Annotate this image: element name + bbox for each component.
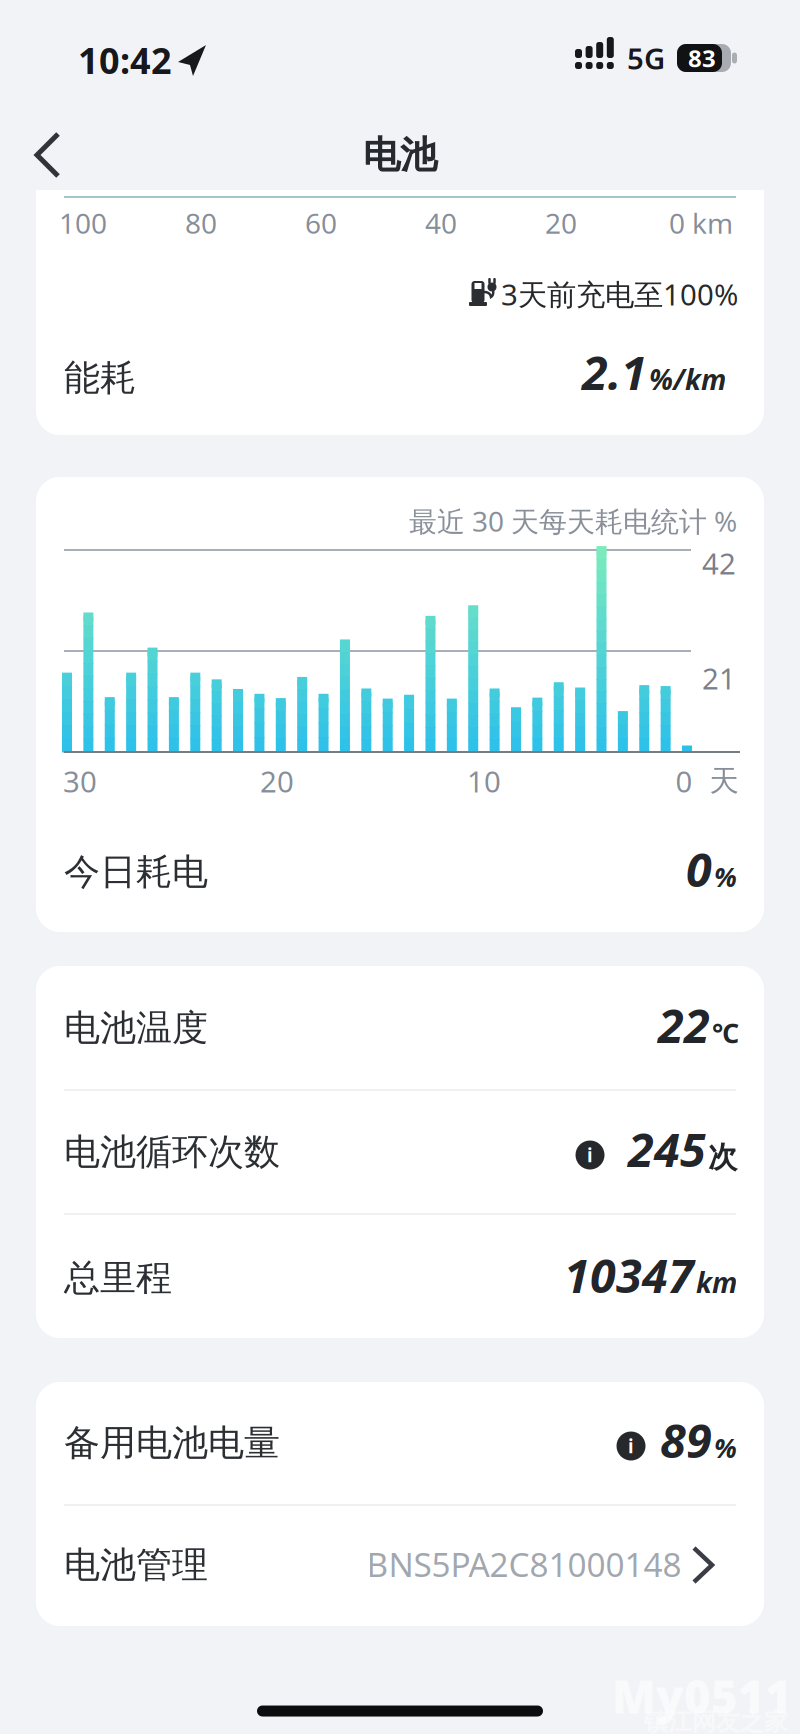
staticText: 能耗 (64, 356, 136, 400)
staticText: %/km (649, 361, 726, 398)
staticText: 10 (467, 761, 501, 800)
button[interactable]: Info (575, 1140, 604, 1169)
staticText: 22 (658, 994, 710, 1056)
staticText: i (628, 1434, 634, 1458)
staticText: 89 (660, 1409, 712, 1471)
staticText: 100 (59, 204, 107, 242)
staticText: BNS5PA2C81000148 (366, 1542, 681, 1586)
staticText: My0511 (612, 1666, 792, 1726)
staticText: 次 (708, 1139, 737, 1175)
staticText: 20 (545, 204, 577, 242)
staticText: 最近 30 天每天耗电统计 % (409, 502, 737, 540)
staticText: 10347 (564, 1244, 694, 1306)
staticText: 21 (702, 658, 736, 697)
staticText: 42 (702, 543, 736, 582)
staticText: 3天前充电至100% (501, 274, 738, 313)
staticText: 电池 (363, 132, 437, 178)
staticText: 电池温度 (64, 1006, 208, 1050)
staticText: 80 (185, 204, 217, 242)
staticText: 10:42 (78, 36, 172, 84)
staticText: 5G (627, 38, 665, 77)
staticText: 电池管理 (64, 1543, 208, 1587)
staticText: km (696, 1264, 737, 1301)
staticText: 天 (709, 763, 738, 799)
staticText: 40 (425, 204, 457, 242)
staticText: 0 km (669, 204, 733, 242)
staticText: 总里程 (64, 1256, 172, 1300)
staticText: 245 (628, 1118, 706, 1180)
staticText: ℃ (712, 1015, 739, 1050)
staticText: 2.1 (582, 341, 647, 403)
button[interactable]: Back (4, 111, 92, 199)
staticText: 20 (260, 761, 294, 800)
staticText: 0 (675, 761, 692, 800)
staticText: 今日耗电 (64, 850, 208, 894)
staticText: 60 (305, 204, 337, 242)
button[interactable]: Info (616, 1431, 645, 1460)
staticText: i (587, 1143, 593, 1167)
staticText: % (714, 1430, 737, 1465)
staticText: 30 (63, 761, 97, 800)
staticText: 备用电池电量 (64, 1421, 280, 1465)
button[interactable]: 电池管理 (36, 1505, 764, 1625)
staticText: 83 (688, 42, 716, 74)
staticText: 0 (686, 838, 712, 900)
staticText: 电池循环次数 (64, 1130, 280, 1174)
staticText: % (714, 859, 737, 894)
